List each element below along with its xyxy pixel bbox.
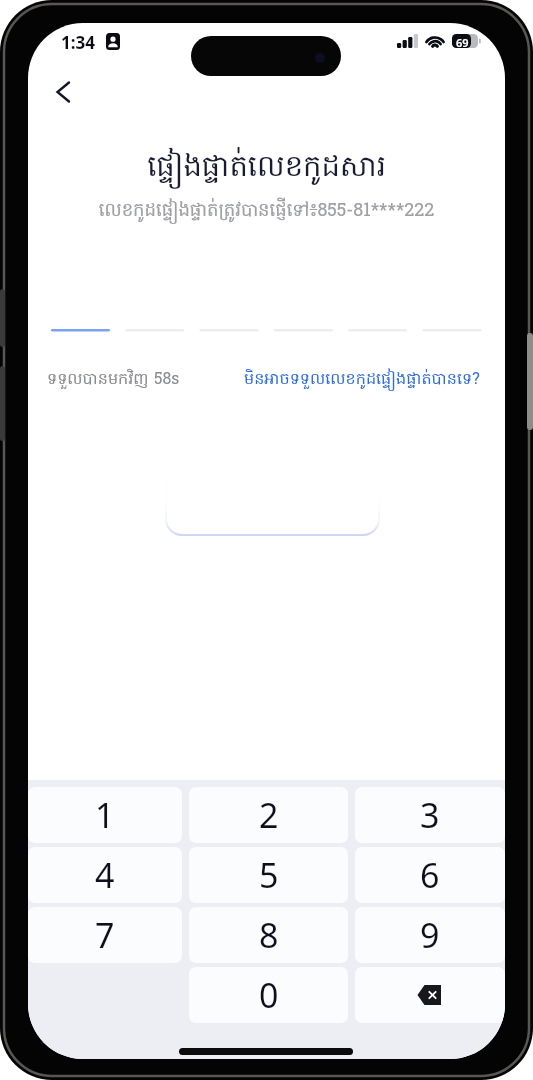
button[interactable]: 8 bbox=[189, 907, 348, 963]
staticText: 0 bbox=[259, 972, 279, 1018]
button[interactable] bbox=[355, 967, 505, 1023]
button[interactable]: 7 bbox=[28, 907, 182, 963]
button[interactable]: 3 bbox=[355, 787, 505, 843]
staticText: 5 bbox=[259, 852, 279, 898]
staticText: 1:34 bbox=[61, 31, 95, 54]
staticText: 1 bbox=[95, 792, 115, 838]
button[interactable]: 9 bbox=[355, 907, 505, 963]
button[interactable]: 4 bbox=[28, 847, 182, 903]
button[interactable]: 0 bbox=[189, 967, 348, 1023]
button[interactable]: 6 bbox=[355, 847, 505, 903]
button[interactable]: 2 bbox=[189, 787, 348, 843]
staticText: 3 bbox=[420, 792, 440, 838]
staticText: 9 bbox=[420, 912, 440, 958]
button[interactable]: 5 bbox=[189, 847, 348, 903]
staticText: 7 bbox=[95, 912, 115, 958]
button[interactable]: មិនអាចទទួលលេខកូដផ្ទៀងផ្ទាត់បានទេ? bbox=[244, 368, 480, 391]
button[interactable]: 1 bbox=[28, 787, 182, 843]
staticText: 2 bbox=[259, 792, 279, 838]
staticText: ផ្ទៀងផ្ទាត់លេខកូដសារ bbox=[28, 148, 505, 190]
staticText: 8 bbox=[259, 912, 279, 958]
staticText: លេខកូដផ្ទៀងផ្ទាត់ត្រូវបានផ្ញើទៅ៖855-81**… bbox=[28, 198, 505, 224]
staticText: 4 bbox=[95, 852, 115, 898]
staticText: ទទួលបានមកវិញ 58s bbox=[47, 368, 180, 391]
staticText: 69 bbox=[456, 35, 469, 50]
staticText: 6 bbox=[420, 852, 440, 898]
button[interactable] bbox=[43, 72, 83, 112]
